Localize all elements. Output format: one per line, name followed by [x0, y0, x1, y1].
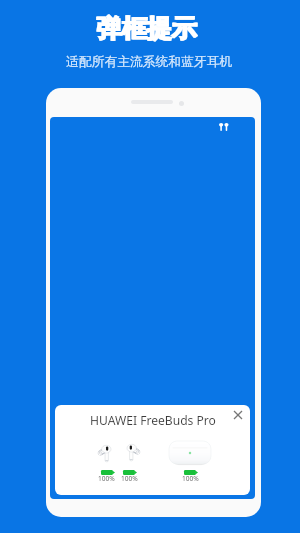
staticText: 适配所有主流系统和蓝牙耳机 [66, 54, 233, 70]
staticText: 100% [182, 474, 199, 483]
staticText: 100% [121, 474, 138, 483]
button[interactable]: HUAWEI FreeBuds Pro [55, 405, 250, 495]
other: Bluetooth earbuds connected [219, 123, 229, 131]
staticText: 弹框提示 [96, 13, 196, 44]
staticText: 弹框提示 [97, 13, 197, 44]
staticText: 100% [98, 474, 115, 483]
staticText: HUAWEI FreeBuds Pro [90, 412, 216, 428]
button[interactable]: Close [229, 406, 247, 424]
